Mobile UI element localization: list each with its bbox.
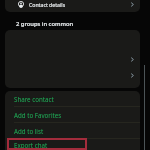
staticText: Add to Favorites bbox=[14, 111, 62, 119]
staticText: Share contact bbox=[14, 95, 54, 103]
button[interactable]: Open group bbox=[5, 67, 140, 83]
staticText: Add to list bbox=[14, 127, 44, 135]
button[interactable]: Export chat bbox=[5, 139, 140, 150]
other: Open group bbox=[130, 73, 135, 78]
staticText: Contact details bbox=[29, 1, 66, 8]
staticText: Export chat bbox=[14, 141, 48, 149]
button[interactable]: Open group bbox=[5, 51, 140, 67]
staticText: 2 groups in common bbox=[16, 20, 74, 28]
other: Open group bbox=[130, 57, 135, 62]
button[interactable]: Add to Favorites bbox=[5, 107, 140, 122]
other: Open contact details bbox=[130, 2, 135, 7]
button[interactable]: Share contact bbox=[5, 91, 140, 106]
button[interactable]: Add to list bbox=[5, 123, 140, 138]
button[interactable]: Contact details bbox=[5, 0, 140, 12]
